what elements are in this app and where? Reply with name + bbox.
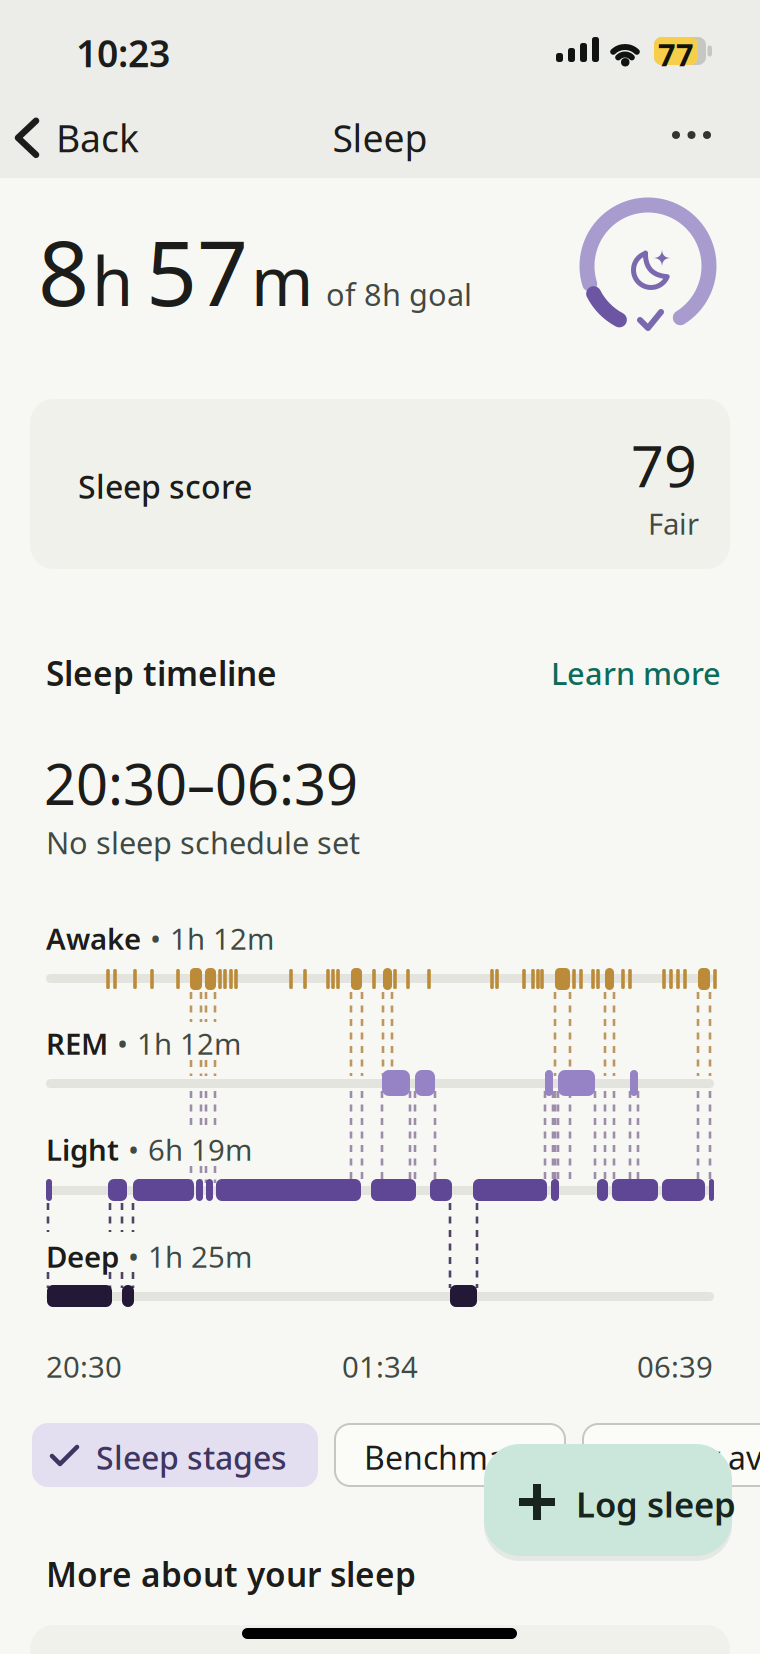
button[interactable]: More options [648, 113, 716, 157]
staticText: Deep [46, 1237, 119, 1276]
staticText: Awake [46, 919, 141, 958]
staticText: h [92, 236, 133, 324]
staticText: 1h 12m [137, 1024, 241, 1063]
staticText: Sleep stages [96, 1436, 287, 1478]
staticText: Log sleep [576, 1481, 736, 1527]
staticText: Back [56, 113, 139, 163]
button[interactable]: Sleep stages [32, 1423, 318, 1487]
button[interactable]: Sleep score [30, 399, 730, 569]
staticText: 1h 12m [170, 919, 274, 958]
staticText: 1h 25m [148, 1237, 252, 1276]
staticText: More about your sleep [46, 1552, 416, 1596]
button[interactable]: Learn more [551, 653, 721, 693]
staticText: Benchmark [364, 1436, 536, 1478]
staticText: of 8h goal [326, 274, 472, 314]
button[interactable]: Back [12, 113, 139, 163]
staticText: • [128, 1130, 139, 1169]
staticText: • [117, 1024, 128, 1063]
staticText: 10:23 [76, 28, 170, 78]
staticText: 06:39 [637, 1347, 713, 1386]
staticText: 20:30–06:39 [44, 746, 358, 820]
staticText: Sleep timeline [46, 651, 277, 695]
staticText: Light [46, 1130, 119, 1169]
button[interactable]: Log sleep [484, 1444, 732, 1556]
staticText: 6h 19m [148, 1130, 252, 1169]
staticText: • [128, 1237, 139, 1276]
staticText: 8 [38, 212, 89, 331]
staticText: REM [46, 1024, 108, 1063]
staticText: 77 [658, 34, 694, 75]
staticText: No sleep schedule set [46, 822, 360, 863]
button[interactable]: 30-day av [582, 1423, 760, 1487]
staticText: 79 [631, 427, 697, 503]
staticText: 20:30 [46, 1347, 122, 1386]
staticText: 57 [146, 212, 248, 331]
button[interactable]: Benchmark [334, 1423, 566, 1487]
staticText: • [150, 919, 161, 958]
staticText: 01:34 [342, 1347, 418, 1386]
staticText: Sleep score [78, 465, 252, 507]
staticText: m [251, 236, 313, 324]
staticText: Sleep [332, 113, 427, 163]
staticText: 30-day av [620, 1436, 760, 1478]
staticText: Learn more [551, 653, 721, 693]
staticText: Fair [648, 504, 699, 543]
